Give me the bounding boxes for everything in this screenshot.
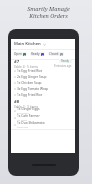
button[interactable]: #7: [11, 59, 75, 69]
button[interactable]: 1x Egg Fried Rice: [14, 68, 72, 74]
staticText: No sugar: [17, 118, 28, 121]
button[interactable]: Ready: [59, 59, 72, 63]
button[interactable]: Switch kitchen: [43, 43, 46, 46]
staticText: 3: [42, 53, 44, 56]
staticText: 8 minutes ago: [54, 64, 72, 68]
staticText: 1x Cafe Farmer: [17, 114, 40, 118]
button[interactable]: 1x Egg Fried Rice: [14, 92, 72, 98]
staticText: 5: [24, 53, 26, 56]
staticText: Ready: [31, 52, 40, 56]
staticText: 2x Egg Ginger Soup: [17, 75, 47, 79]
staticText: #8: [14, 99, 20, 105]
button[interactable]: Ready: [30, 52, 45, 56]
staticText: Closed: [49, 52, 59, 56]
button[interactable]: 1x Chicken Soup: [14, 80, 72, 86]
button[interactable]: Main Kitchen: [11, 39, 75, 49]
button[interactable]: 3x Egg Tomato Wrap: [14, 86, 72, 92]
staticText: 9: [61, 53, 63, 56]
staticText: Ready: [61, 59, 70, 63]
staticText: 1x Egg Fried Rice: [17, 93, 43, 97]
staticText: Open: [14, 52, 22, 56]
staticText: Kitchen Orders: [29, 12, 68, 19]
staticText: 1x Ginger Eggs: [17, 107, 40, 111]
button[interactable]: 1x Ginger Eggs: [14, 107, 72, 114]
staticText: Table 2 · 3 items: [14, 105, 38, 109]
staticText: 1x Chicken Soup: [17, 81, 42, 85]
staticText: 1x Duo Shibamoto: [17, 121, 45, 125]
button[interactable]: Closed: [48, 52, 64, 56]
staticText: Extra spicy: [17, 111, 29, 114]
button[interactable]: #8: [11, 99, 75, 109]
staticText: 3x Egg Tomato Wrap: [17, 87, 48, 91]
staticText: Table 4 · 5 items: [14, 65, 38, 69]
button[interactable]: 2x Egg Ginger Soup: [14, 74, 72, 80]
staticText: #7: [14, 59, 20, 65]
staticText: Table side: [17, 125, 29, 128]
staticText: Main Kitchen: [14, 41, 41, 47]
button[interactable]: 1x Duo Shibamoto: [14, 121, 72, 128]
staticText: 1x Egg Fried Rice: [17, 69, 43, 73]
staticText: Smartly Manage: [27, 5, 70, 12]
button[interactable]: Open: [13, 52, 27, 56]
button[interactable]: 1x Cafe Farmer: [14, 114, 72, 121]
